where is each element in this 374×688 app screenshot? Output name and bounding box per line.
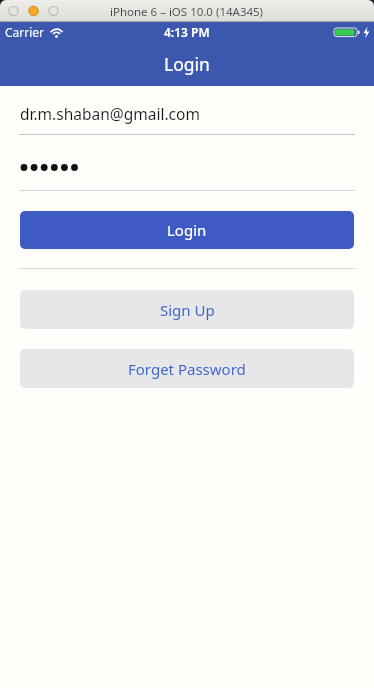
staticText: Login [164, 52, 210, 76]
staticText: dr.m.shaban@gmail.com [20, 103, 200, 124]
staticText: Carrier [5, 24, 45, 40]
button[interactable]: Sign Up [20, 290, 354, 329]
button[interactable]: Login [20, 211, 354, 249]
button[interactable]: Forget Password [20, 349, 354, 388]
staticText: iPhone 6 – iOS 10.0 (14A345) [110, 4, 264, 20]
staticText: Sign Up [160, 300, 215, 320]
staticText: Forget Password [128, 359, 246, 379]
button[interactable] [326, 22, 374, 42]
staticText: 4:13 PM [164, 24, 210, 40]
button[interactable] [0, 164, 374, 171]
button[interactable]: dr.m.shaban@gmail.com [0, 103, 374, 124]
staticText: Login [167, 220, 207, 240]
